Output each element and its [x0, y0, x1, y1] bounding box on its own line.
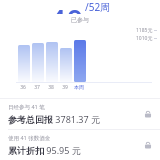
staticText: 参考总回报	[8, 114, 53, 125]
staticText: 3781.37 元	[53, 113, 100, 125]
staticText: 39	[62, 84, 68, 91]
staticText: 使用 41 张数酒金	[8, 134, 51, 142]
staticText: 40	[49, 0, 84, 14]
staticText: 36	[20, 84, 26, 91]
staticText: 38	[48, 84, 54, 91]
staticText: 37	[34, 84, 40, 91]
other: Lock discount	[142, 139, 154, 151]
staticText: 1185元	[136, 27, 153, 34]
staticText: 1010元	[136, 35, 153, 42]
staticText: 已参与	[71, 16, 89, 24]
staticText: 日经参与 41 笔	[8, 103, 45, 111]
button[interactable]: 使用 41 张数酒金	[0, 130, 160, 160]
button[interactable]: 日经参与 41 笔	[0, 99, 160, 129]
staticText: 累计折扣	[8, 145, 44, 156]
staticText: 95.95 元	[44, 144, 81, 156]
other: Lock total return	[142, 108, 154, 120]
staticText: 本周	[74, 84, 84, 90]
staticText: /52周	[85, 0, 111, 13]
